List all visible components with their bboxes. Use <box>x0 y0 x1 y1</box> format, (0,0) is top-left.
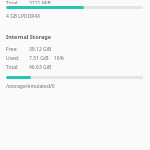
button[interactable]: Free: <box>6 46 143 53</box>
staticText: 16% <box>54 55 64 62</box>
other: Storage usage <box>6 76 143 79</box>
staticText: Internal Storage <box>6 33 52 40</box>
staticText: Total: <box>6 0 19 4</box>
staticText: 4 GB LPDDR4X <box>6 13 41 20</box>
staticText: 3721 MiB <box>29 0 51 4</box>
other: RAM usage <box>6 6 143 9</box>
staticText: 7.51 GiB <box>29 55 49 62</box>
staticText: 39.12 GiB <box>29 46 52 53</box>
staticText: Free: <box>6 46 18 53</box>
staticText: /storage/emulated/0 <box>6 83 55 90</box>
button[interactable]: Total: <box>6 0 143 4</box>
staticText: 46.63 GiB <box>29 64 52 71</box>
staticText: Total: <box>6 64 19 71</box>
button[interactable]: Total: <box>6 64 143 71</box>
button[interactable]: Used: <box>6 55 143 62</box>
staticText: Used: <box>6 55 20 62</box>
